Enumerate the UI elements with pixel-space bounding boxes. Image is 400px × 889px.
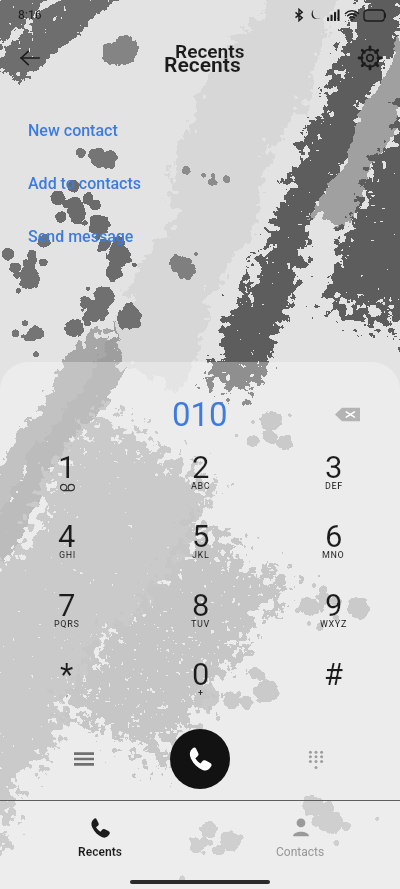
button[interactable]: 7	[0, 575, 134, 644]
staticText: 4	[58, 518, 76, 554]
staticText: 5	[192, 518, 210, 554]
staticText: MNO	[322, 550, 345, 561]
button[interactable]: 1	[0, 437, 134, 506]
staticText: 9	[325, 587, 343, 623]
staticText: 6	[325, 518, 343, 554]
staticText: 8:16	[18, 8, 42, 22]
button[interactable]: 6	[267, 506, 400, 575]
button[interactable]: Backspace	[323, 390, 371, 438]
staticText: 8	[192, 587, 210, 623]
button[interactable]: Back	[8, 36, 52, 80]
button[interactable]: Hide keypad	[294, 737, 338, 781]
staticText: WXYZ	[320, 619, 347, 630]
staticText: 2	[192, 449, 210, 485]
button[interactable]: 2	[134, 437, 267, 506]
staticText: 1	[58, 449, 76, 485]
staticText: PQRS	[54, 619, 80, 630]
button[interactable]: Contacts	[200, 801, 400, 875]
staticText: ABC	[191, 481, 211, 492]
staticText: 3	[325, 449, 343, 485]
button[interactable]: Send message	[0, 224, 400, 248]
button[interactable]: 3	[267, 437, 400, 506]
staticText: GHI	[59, 550, 76, 561]
staticText: Contacts	[276, 845, 325, 859]
button[interactable]: *	[0, 644, 134, 713]
button[interactable]: New contact	[0, 118, 400, 142]
button[interactable]: 5	[134, 506, 267, 575]
staticText: #	[324, 656, 344, 692]
staticText: Recents	[175, 40, 245, 62]
staticText: 0	[192, 656, 210, 692]
button[interactable]: Call	[170, 729, 230, 789]
staticText: JKL	[192, 550, 210, 561]
button[interactable]: Add to contacts	[0, 171, 400, 195]
staticText: 7	[58, 587, 76, 623]
staticText: 010	[172, 395, 228, 434]
staticText: Add to contacts	[28, 174, 142, 193]
button[interactable]: Settings	[348, 36, 392, 80]
button[interactable]: #	[267, 644, 400, 713]
staticText: TUV	[191, 619, 210, 630]
staticText: +	[198, 688, 204, 699]
staticText: *	[60, 656, 74, 692]
button[interactable]: 0	[134, 644, 267, 713]
button[interactable]: 9	[267, 575, 400, 644]
button[interactable]: Recents	[0, 801, 200, 875]
button[interactable]: 4	[0, 506, 134, 575]
staticText: DEF	[325, 481, 343, 492]
staticText: ,	[66, 688, 69, 699]
button[interactable]: 8	[134, 575, 267, 644]
staticText: New contact	[28, 121, 118, 140]
button[interactable]: More options	[62, 737, 106, 781]
staticText: Send message	[28, 227, 134, 246]
staticText: Recents	[78, 845, 122, 859]
staticText: Recents	[164, 53, 241, 78]
